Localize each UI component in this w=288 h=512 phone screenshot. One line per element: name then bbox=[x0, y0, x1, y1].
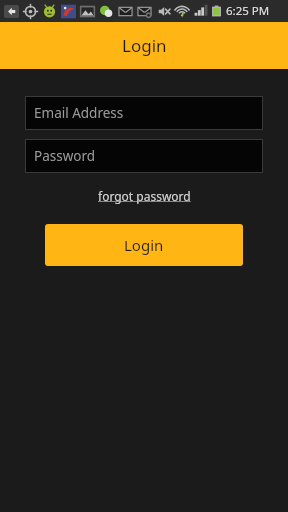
staticText: Login bbox=[122, 34, 167, 57]
staticText: Email Address bbox=[34, 104, 124, 122]
staticText: 6:25 PM bbox=[226, 3, 270, 19]
button[interactable]: Password bbox=[25, 139, 263, 173]
staticText: Password bbox=[34, 147, 96, 165]
button[interactable]: forgot password bbox=[92, 186, 197, 206]
staticText: Login bbox=[124, 235, 164, 255]
staticText: forgot password bbox=[98, 188, 191, 204]
button[interactable]: Email Address bbox=[25, 96, 263, 130]
button[interactable]: Login bbox=[45, 224, 243, 266]
